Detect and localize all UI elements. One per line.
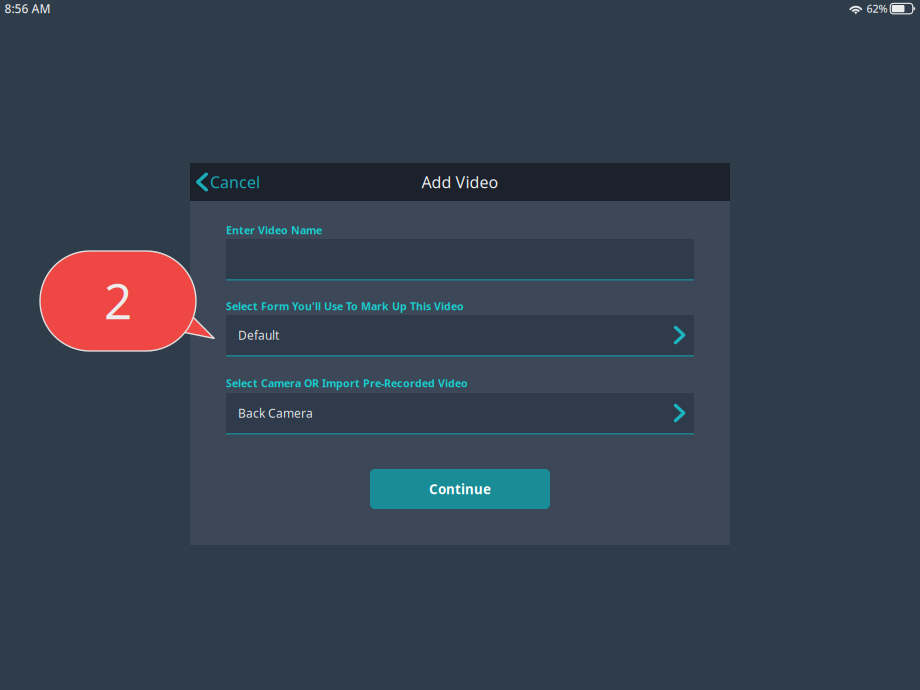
staticText: Select Form You'll Use To Mark Up This V… (226, 299, 464, 313)
staticText: Select Camera OR Import Pre-Recorded Vid… (226, 376, 468, 390)
staticText: Continue (429, 480, 491, 498)
button[interactable]: Cancel (190, 163, 270, 201)
button[interactable]: Enter video name (226, 239, 694, 281)
staticText: 62% (866, 1, 887, 16)
staticText: Default (238, 327, 279, 343)
staticText: 8:56 AM (4, 1, 50, 16)
staticText: Back Camera (238, 405, 313, 421)
staticText: Enter Video Name (226, 223, 322, 237)
button[interactable]: Back Camera (226, 393, 694, 435)
button[interactable]: Default (226, 315, 694, 357)
staticText: Cancel (210, 171, 260, 193)
button[interactable]: Continue (370, 469, 550, 509)
staticText: 2 (104, 267, 132, 333)
staticText: Add Video (421, 171, 498, 193)
